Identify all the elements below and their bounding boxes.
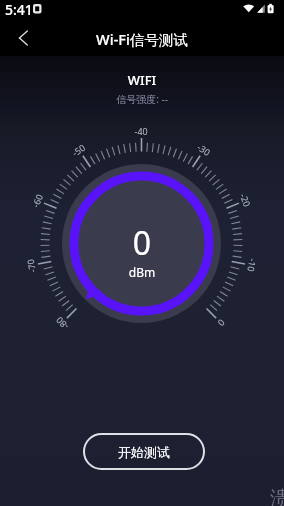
staticText: WIFI: [0, 71, 284, 89]
button[interactable]: 开始测试: [83, 433, 205, 470]
staticText: 开始测试: [118, 444, 170, 460]
staticText: 0: [0, 221, 284, 265]
staticText: 5:41: [5, 0, 33, 19]
staticText: dBm: [0, 264, 284, 280]
button[interactable]: [8, 26, 36, 54]
staticText: 溃: [270, 486, 284, 506]
staticText: Wi-Fi信号测试: [0, 29, 284, 49]
staticText: 信号强度: --: [0, 92, 284, 106]
